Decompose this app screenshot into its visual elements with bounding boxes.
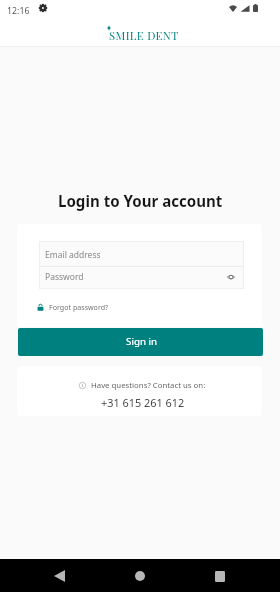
staticText: SMILE DENT [109,28,179,43]
staticText: Login to Your account [58,191,223,212]
staticText: 12:16 [7,5,30,17]
button[interactable]: Sign in [18,328,263,356]
button[interactable]: Password [39,267,244,289]
button[interactable]: Home [126,561,154,589]
staticText: Have questions? Contact us on: [91,380,206,391]
button[interactable]: Back [45,561,73,589]
staticText: Email address [45,249,101,261]
staticText: Sign in [126,335,158,348]
button[interactable]: Recent apps [206,561,234,589]
staticText: Password [45,271,84,283]
staticText: Forgot password? [49,302,109,312]
staticText: +31 615 261 612 [101,395,185,410]
button[interactable]: Have questions? Contact us on: [17,366,262,416]
button[interactable]: Forgot password? [37,302,109,312]
button[interactable]: Email address [39,241,244,266]
